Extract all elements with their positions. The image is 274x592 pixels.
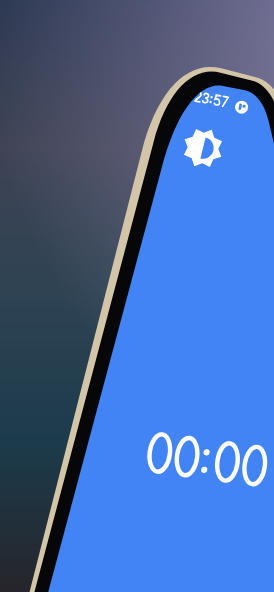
button[interactable]: Timer app running on a phone <box>0 0 274 592</box>
